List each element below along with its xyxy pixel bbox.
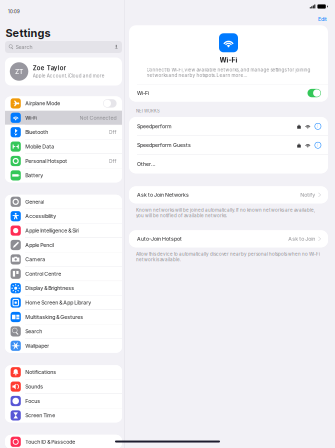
- staticText: Multitasking & Gestures: [25, 314, 83, 320]
- button[interactable]: Battery: [5, 168, 122, 182]
- staticText: Control Centre: [25, 271, 61, 277]
- button[interactable]: Focus: [5, 394, 122, 408]
- staticText: Speedperform: [137, 123, 172, 129]
- button[interactable]: ZT: [5, 57, 122, 85]
- staticText: Screen Time: [25, 412, 55, 419]
- button[interactable]: Apple Intelligence & Siri: [5, 224, 122, 238]
- staticText: Apple Account, iCloud and more: [33, 73, 105, 79]
- button[interactable]: Wallpaper: [5, 339, 122, 353]
- button[interactable]: Wi-Fi: [129, 85, 328, 102]
- button[interactable]: Other…: [129, 155, 328, 173]
- staticText: Notify: [300, 192, 315, 198]
- staticText: Accessibility: [25, 213, 56, 219]
- button[interactable]: Accessibility: [5, 209, 122, 223]
- button[interactable]: Control Centre: [5, 267, 122, 281]
- staticText: Battery: [25, 172, 43, 179]
- staticText: Known networks will be joined automatica…: [136, 207, 315, 218]
- button[interactable]: Edit: [310, 13, 335, 25]
- button[interactable]: Screen Time: [5, 408, 122, 422]
- staticText: Wallpaper: [25, 343, 49, 349]
- button[interactable]: Speedperform Guests: [129, 136, 328, 154]
- button[interactable]: Mobile Data: [5, 140, 122, 154]
- staticText: Connect to Wi-Fi, view available network…: [146, 67, 310, 78]
- button[interactable]: General: [5, 195, 122, 209]
- button[interactable]: Speedperform: [129, 117, 328, 136]
- button[interactable]: Touch ID & Passcode: [5, 435, 122, 448]
- button[interactable]: Display & Brightness: [5, 281, 122, 295]
- staticText: Ask to Join Networks: [137, 192, 189, 198]
- staticText: i: [317, 142, 318, 148]
- staticText: Touch ID & Passcode: [25, 439, 75, 445]
- staticText: Search: [25, 328, 42, 335]
- button[interactable]: Camera: [5, 252, 122, 266]
- button[interactable]: Notifications: [5, 365, 122, 379]
- button[interactable]: Bluetooth: [5, 125, 122, 139]
- button[interactable]: Multitasking & Gestures: [5, 310, 122, 324]
- button[interactable]: Personal Hotspot: [5, 154, 122, 168]
- staticText: Apple Pencil: [25, 242, 54, 248]
- button[interactable]: Search: [5, 324, 122, 338]
- button[interactable]: Ask to Join Networks: [129, 186, 328, 203]
- staticText: Wi-Fi: [137, 90, 149, 96]
- staticText: Auto-Join Hotspot: [137, 236, 182, 242]
- staticText: General: [25, 199, 44, 205]
- staticText: NETWORKS: [136, 109, 160, 114]
- button[interactable]: Sounds: [5, 380, 122, 394]
- staticText: Focus: [25, 398, 40, 404]
- button[interactable]: Wi-Fi: [5, 111, 122, 125]
- staticText: Speedperform Guests: [137, 142, 191, 148]
- staticText: ZT: [15, 67, 23, 76]
- staticText: Camera: [25, 256, 45, 263]
- staticText: Off: [109, 158, 117, 164]
- staticText: Mobile Data: [25, 143, 54, 150]
- staticText: 10:09: [8, 9, 20, 14]
- staticText: Wi-Fi: [219, 56, 237, 64]
- staticText: i: [317, 123, 318, 129]
- staticText: Notifications: [25, 369, 56, 375]
- staticText: Other…: [137, 161, 155, 167]
- staticText: Settings: [5, 26, 50, 40]
- staticText: Bluetooth: [25, 129, 48, 135]
- staticText: Off: [109, 129, 117, 135]
- staticText: Airplane Mode: [25, 100, 60, 107]
- staticText: Sounds: [25, 383, 43, 390]
- button[interactable]: Search: [5, 41, 122, 53]
- button[interactable]: Apple Pencil: [5, 238, 122, 252]
- staticText: Display & Brightness: [25, 285, 74, 291]
- staticText: Zoe Taylor: [33, 64, 66, 72]
- button[interactable]: Airplane Mode: [5, 96, 122, 110]
- button[interactable]: Auto-Join Hotspot: [129, 230, 328, 247]
- staticText: Wi-Fi: [25, 115, 37, 121]
- staticText: Not Connected: [80, 115, 117, 121]
- staticText: Apple Intelligence & Siri: [25, 227, 79, 234]
- staticText: Edit: [318, 16, 327, 22]
- staticText: Ask to Join: [288, 236, 315, 242]
- staticText: Allow this device to automatically disco…: [136, 251, 320, 262]
- button[interactable]: Home Screen & App Library: [5, 296, 122, 310]
- staticText: Search: [16, 44, 33, 50]
- staticText: Home Screen & App Library: [25, 299, 91, 306]
- staticText: Personal Hotspot: [25, 158, 67, 164]
